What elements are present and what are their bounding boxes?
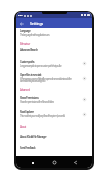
staticText: 5:50 [18,14,23,17]
staticText: Settings [30,21,44,26]
staticText: Custom paths [20,60,35,64]
staticText: Root Explorer [20,110,34,114]
staticText: Language [20,29,31,33]
staticText: Advanced Search [20,48,38,52]
staticText: Open files in new tab [20,73,42,77]
staticText: Advanced [20,88,30,92]
staticText: Send Feedback [20,146,36,150]
button[interactable]: Show Permissions [16,94,92,105]
button[interactable]: Recents [28,158,37,167]
button[interactable]: Back [71,158,80,167]
staticText: About XSolid File Manager [20,135,47,139]
staticText: Show Permissions [20,96,39,100]
button[interactable]: Root Explorer [16,107,92,121]
staticText: The language that the application uses [20,33,50,37]
button[interactable]: Custom paths [16,58,92,69]
staticText: Long press any tab to open a custom path… [20,64,62,68]
staticText: About [20,125,27,129]
button[interactable]: Open files in new tab [16,71,92,85]
staticText: Behaviour [20,42,30,46]
staticText: This mode lets you modify any files of t… [20,114,65,118]
button[interactable]: Home [50,158,59,167]
button[interactable]: Back [18,20,25,27]
button[interactable]: Advanced Search [16,46,92,54]
button[interactable]: Language [16,28,92,37]
button[interactable]: About XSolid File Manager [16,133,92,141]
staticText: Show the permissions of the files and fo… [20,100,54,104]
staticText: Whenever you open a file it will be open… [20,77,76,83]
button[interactable]: Send Feedback [16,144,92,152]
